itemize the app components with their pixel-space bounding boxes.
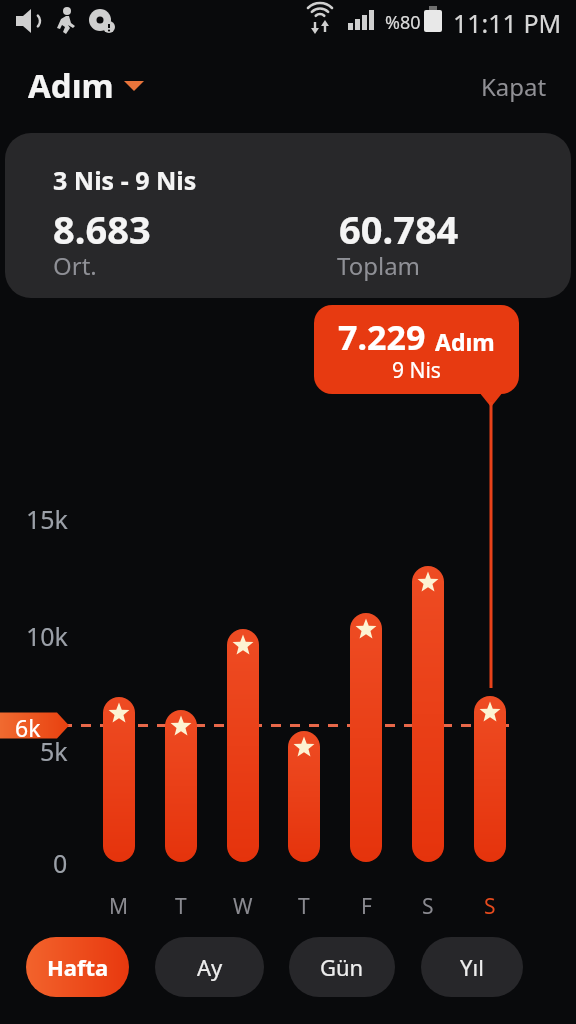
staticText: S [422,892,434,921]
staticText: 3 Nis - 9 Nis [53,163,197,197]
staticText: 11:11 PM [453,6,562,40]
staticText: M [109,892,129,921]
staticText: T [298,892,310,921]
staticText: Adım [435,326,495,357]
staticText: Kapat [481,70,547,103]
button[interactable]: Adım [28,63,144,108]
staticText: F [361,892,372,921]
staticText: Ort. [53,249,97,282]
staticText: 5k [40,734,68,768]
staticText: Gün [320,952,364,982]
staticText: Yıl [460,952,484,982]
button[interactable]: Gün [289,937,395,997]
staticText: %80 [385,10,421,35]
staticText: 6k [15,712,41,739]
staticText: 9 Nis [392,356,441,385]
button[interactable]: Hafta [26,937,129,997]
button[interactable]: Kapat [475,64,553,109]
staticText: T [175,892,187,921]
button[interactable]: Yıl [421,937,523,997]
button[interactable]: 3 Nis - 9 Nis [5,133,571,298]
staticText: 7.229 [338,314,426,360]
staticText: Ay [197,952,223,982]
staticText: W [233,892,253,921]
staticText: 8.683 [53,203,151,255]
button[interactable]: Ay [155,937,264,997]
staticText: S [484,892,496,921]
staticText: Toplam [337,249,421,282]
staticText: 0 [53,846,68,880]
staticText: 60.784 [339,203,459,255]
staticText: Hafta [47,952,109,982]
staticText: 15k [26,502,68,536]
staticText: 10k [26,619,68,653]
staticText: Adım [28,63,114,108]
